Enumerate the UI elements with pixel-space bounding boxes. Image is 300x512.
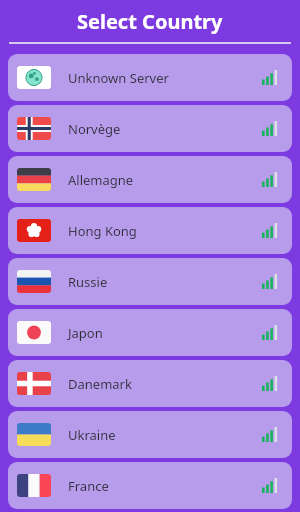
button[interactable]: Unknown Server [8,54,292,101]
button[interactable]: Allemagne [8,156,292,203]
button[interactable]: Ukraine [8,411,292,458]
button[interactable]: Japon [8,309,292,356]
button[interactable]: Russie [8,258,292,305]
staticText: Norvège [68,120,121,138]
staticText: Japon [68,324,103,342]
button[interactable]: Norvège [8,105,292,152]
staticText: Allemagne [68,171,134,189]
staticText: Select Country [77,8,223,35]
staticText: Ukraine [68,426,116,444]
staticText: Hong Kong [68,222,137,240]
staticText: Danemark [68,375,132,393]
button[interactable]: Danemark [8,360,292,407]
staticText: Unknown Server [68,69,169,87]
staticText: France [68,477,109,495]
button[interactable]: France [8,462,292,509]
button[interactable]: Hong Kong [8,207,292,254]
staticText: Russie [68,273,108,291]
